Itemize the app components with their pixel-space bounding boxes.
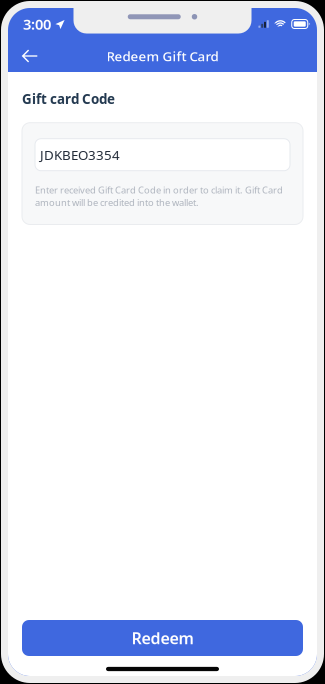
- staticText: Redeem: [131, 627, 193, 649]
- button[interactable]: Back: [8, 40, 46, 72]
- button[interactable]: Redeem: [22, 620, 303, 656]
- staticText: JDKBEO3354: [40, 146, 120, 164]
- staticText: Redeem Gift Card: [106, 47, 218, 65]
- staticText: Gift card Code: [22, 90, 115, 108]
- staticText: Enter received Gift Card Code in order t…: [35, 184, 283, 208]
- staticText: 3:00: [23, 14, 51, 34]
